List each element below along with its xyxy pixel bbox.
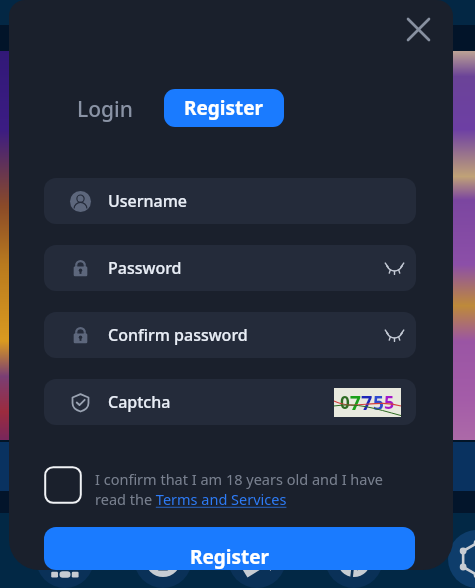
staticText: 5 xyxy=(373,390,384,416)
button[interactable]: Register xyxy=(164,89,284,127)
staticText: 7 xyxy=(361,389,373,416)
staticText: I confirm that I am 18 years old and I h… xyxy=(95,469,413,510)
button[interactable]: Toggle password visibility xyxy=(379,320,409,350)
staticText: 0 xyxy=(340,391,350,414)
button[interactable]: Username xyxy=(44,178,416,224)
staticText: Confirm password xyxy=(108,324,248,346)
button[interactable]: Toggle password visibility xyxy=(379,253,409,283)
button[interactable]: Promotions xyxy=(228,530,286,588)
staticText: Register xyxy=(190,544,270,570)
button[interactable]: Confirm password xyxy=(44,312,416,358)
staticText: Password xyxy=(108,257,182,279)
button[interactable]: Games xyxy=(36,530,94,588)
button[interactable]: Login xyxy=(77,95,133,124)
staticText: Captcha xyxy=(108,391,171,413)
staticText: Login xyxy=(77,95,133,124)
button[interactable]: Captcha xyxy=(44,379,416,425)
button[interactable]: Confirm age xyxy=(44,466,82,504)
staticText: Username xyxy=(108,190,188,212)
button[interactable]: Menu xyxy=(448,530,475,588)
button[interactable]: Password xyxy=(44,245,416,291)
staticText: Register xyxy=(184,95,264,121)
staticText: 5 xyxy=(384,390,395,415)
staticText: 7 xyxy=(350,390,361,416)
button[interactable]: Close xyxy=(398,9,438,49)
button[interactable]: Register xyxy=(44,527,415,570)
button[interactable]: Support xyxy=(325,530,383,588)
button[interactable]: Deposit xyxy=(134,530,192,588)
